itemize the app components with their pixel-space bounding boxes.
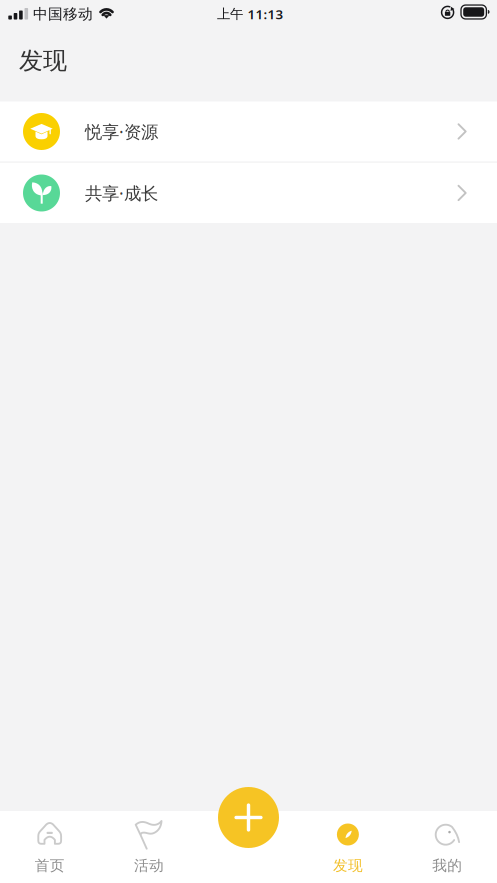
staticText: 11:13: [247, 5, 283, 23]
button[interactable]: Add: [218, 787, 279, 848]
staticText: 发现: [19, 46, 67, 75]
button[interactable]: 活动: [99, 802, 199, 883]
button[interactable]: 悦享·资源: [0, 101, 497, 161]
staticText: 发现: [333, 856, 363, 874]
button[interactable]: 发现: [298, 802, 398, 883]
staticText: 我的: [432, 856, 462, 874]
staticText: 中国移动: [33, 5, 93, 23]
staticText: 上午: [217, 6, 243, 22]
button[interactable]: 我的: [398, 802, 497, 883]
button[interactable]: 共享·成长: [0, 163, 497, 223]
staticText: 悦享·资源: [85, 120, 158, 143]
staticText: 共享·成长: [85, 181, 158, 204]
staticText: 活动: [134, 856, 164, 874]
button[interactable]: 首页: [0, 802, 99, 883]
staticText: 首页: [35, 856, 65, 874]
